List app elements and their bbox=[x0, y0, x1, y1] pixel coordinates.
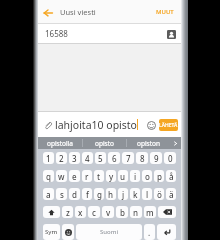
button[interactable]: h bbox=[106, 188, 116, 200]
staticText: . bbox=[148, 227, 151, 238]
button[interactable] bbox=[62, 224, 74, 240]
staticText: u bbox=[120, 171, 126, 182]
button[interactable]: u bbox=[118, 170, 128, 182]
button[interactable]: More suggestions bbox=[170, 137, 181, 149]
button[interactable]: a bbox=[43, 188, 54, 200]
button[interactable]: Back bbox=[38, 0, 57, 24]
staticText: t bbox=[97, 171, 101, 182]
button[interactable]: k bbox=[130, 188, 140, 200]
button[interactable]: 7 bbox=[122, 152, 134, 164]
staticText: Sym bbox=[45, 228, 58, 236]
button[interactable] bbox=[158, 206, 176, 218]
staticText: 9 bbox=[154, 153, 159, 164]
button[interactable]: w bbox=[56, 170, 67, 182]
staticText: 1 bbox=[46, 153, 51, 164]
staticText: LÄHETÄ bbox=[159, 122, 178, 129]
button[interactable]: i bbox=[130, 170, 140, 182]
button[interactable]: 0 bbox=[164, 152, 176, 164]
button[interactable]: q bbox=[43, 170, 54, 182]
button[interactable]: y bbox=[106, 170, 116, 182]
staticText: 6 bbox=[112, 153, 117, 164]
staticText: p bbox=[157, 171, 162, 182]
staticText: MUUT bbox=[156, 8, 174, 16]
button[interactable]: 5 bbox=[95, 152, 106, 164]
button[interactable]: 3 bbox=[69, 152, 80, 164]
staticText: ä bbox=[169, 189, 174, 200]
staticText: d bbox=[72, 189, 77, 200]
staticText: å bbox=[169, 171, 174, 182]
staticText: o bbox=[145, 171, 150, 182]
staticText: 7 bbox=[126, 153, 131, 164]
button[interactable]: å bbox=[166, 170, 176, 182]
staticText: y bbox=[109, 171, 114, 182]
button[interactable]: g bbox=[94, 188, 104, 200]
staticText: i bbox=[134, 171, 137, 182]
staticText: x bbox=[78, 207, 83, 218]
staticText: q bbox=[46, 171, 51, 182]
staticText: w bbox=[58, 171, 65, 182]
button[interactable] bbox=[43, 206, 60, 218]
button[interactable]: Suomi bbox=[76, 224, 142, 240]
button[interactable]: o bbox=[142, 170, 152, 182]
staticText: h bbox=[108, 189, 114, 200]
staticText: 16588 bbox=[45, 28, 68, 39]
staticText: b bbox=[120, 207, 125, 218]
staticText: r bbox=[85, 171, 89, 182]
button[interactable]: 6 bbox=[108, 152, 120, 164]
staticText: lahjoita10 opisto bbox=[55, 118, 137, 132]
button[interactable]: n bbox=[130, 206, 142, 218]
staticText: g bbox=[97, 189, 102, 200]
staticText: e bbox=[72, 171, 77, 182]
staticText: j bbox=[122, 189, 125, 200]
button[interactable]: 8 bbox=[136, 152, 148, 164]
button[interactable]: opistolla bbox=[38, 137, 82, 149]
button[interactable]: f bbox=[82, 188, 92, 200]
button[interactable]: LÄHETÄ bbox=[159, 119, 178, 131]
button[interactable]: v bbox=[102, 206, 114, 218]
button[interactable]: t bbox=[94, 170, 104, 182]
button[interactable]: p bbox=[154, 170, 164, 182]
button[interactable]: MUUT bbox=[149, 0, 181, 24]
button[interactable]: d bbox=[69, 188, 80, 200]
button[interactable]: 9 bbox=[150, 152, 162, 164]
button[interactable]: Sym bbox=[43, 224, 60, 240]
staticText: m bbox=[146, 207, 154, 218]
button[interactable]: b bbox=[116, 206, 128, 218]
button[interactable]: 2 bbox=[56, 152, 67, 164]
staticText: z bbox=[66, 207, 70, 218]
staticText: 2 bbox=[59, 153, 64, 164]
staticText: 8 bbox=[140, 153, 145, 164]
button[interactable]: r bbox=[82, 170, 92, 182]
button[interactable]: x bbox=[75, 206, 86, 218]
staticText: 5 bbox=[98, 153, 103, 164]
button[interactable]: e bbox=[69, 170, 80, 182]
button[interactable]: c bbox=[88, 206, 100, 218]
staticText: Uusi viesti bbox=[60, 7, 96, 17]
button[interactable]: j bbox=[118, 188, 128, 200]
button[interactable]: . bbox=[144, 224, 155, 240]
button[interactable]: m bbox=[144, 206, 156, 218]
button[interactable]: z bbox=[62, 206, 73, 218]
staticText: 0 bbox=[168, 153, 173, 164]
staticText: l bbox=[146, 189, 149, 200]
button[interactable]: l bbox=[142, 188, 152, 200]
button[interactable]: s bbox=[56, 188, 67, 200]
button[interactable]: ö bbox=[154, 188, 164, 200]
staticText: f bbox=[86, 189, 89, 200]
button[interactable]: opiston bbox=[127, 137, 170, 149]
button[interactable]: 4 bbox=[82, 152, 93, 164]
staticText: 3 bbox=[72, 153, 77, 164]
staticText: c bbox=[92, 207, 96, 218]
button[interactable]: Emoji bbox=[144, 118, 158, 132]
button[interactable]: opisto bbox=[83, 137, 126, 149]
staticText: k bbox=[133, 189, 138, 200]
button[interactable]: 1 bbox=[43, 152, 54, 164]
staticText: v bbox=[106, 207, 111, 218]
button[interactable]: Contacts bbox=[164, 27, 178, 41]
button[interactable]: Attach bbox=[42, 119, 54, 131]
staticText: n bbox=[133, 207, 139, 218]
button[interactable]: ä bbox=[166, 188, 176, 200]
button[interactable] bbox=[157, 224, 176, 240]
staticText: opistolla bbox=[47, 139, 74, 148]
staticText: opisto bbox=[95, 139, 114, 148]
